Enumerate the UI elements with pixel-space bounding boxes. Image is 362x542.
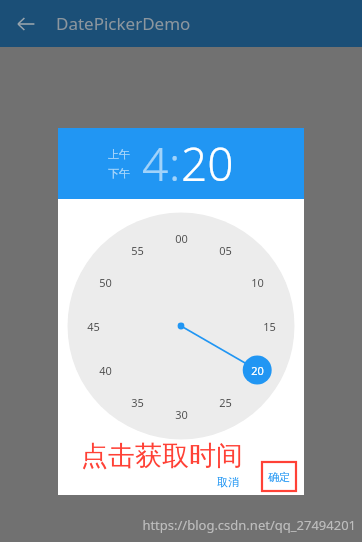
button[interactable]: 取消 — [213, 472, 243, 492]
staticText: 点击获取时间 — [81, 439, 243, 473]
staticText: 20 — [251, 363, 264, 378]
staticText: 取消 — [217, 475, 239, 489]
staticText: 15 — [263, 319, 276, 334]
staticText: 确定 — [268, 470, 290, 484]
button[interactable]: 确定 — [262, 462, 296, 491]
staticText: 20 — [181, 132, 234, 195]
button[interactable]: 20 — [181, 132, 234, 195]
staticText: 35 — [131, 395, 144, 410]
staticText: 50 — [99, 275, 112, 290]
staticText: 40 — [99, 363, 112, 378]
staticText: DatePickerDemo — [56, 12, 191, 35]
staticText: 25 — [219, 395, 232, 410]
staticText: 30 — [175, 407, 188, 422]
button[interactable]: 下午 — [106, 165, 132, 181]
button[interactable]: 4 — [142, 132, 169, 195]
staticText: https://blog.csdn.net/qq_27494201 — [142, 516, 356, 534]
staticText: 10 — [251, 275, 264, 290]
button[interactable]: 上午 — [106, 146, 132, 162]
staticText: : — [169, 132, 181, 195]
button[interactable]: Back — [8, 6, 44, 42]
staticText: 05 — [219, 243, 232, 258]
button[interactable]: 00 — [58, 199, 304, 440]
staticText: 55 — [131, 243, 144, 258]
staticText: 上午 — [108, 147, 130, 161]
staticText: 4 — [142, 132, 169, 195]
staticText: 45 — [87, 319, 100, 334]
staticText: 下午 — [108, 166, 130, 180]
staticText: 00 — [175, 231, 188, 246]
